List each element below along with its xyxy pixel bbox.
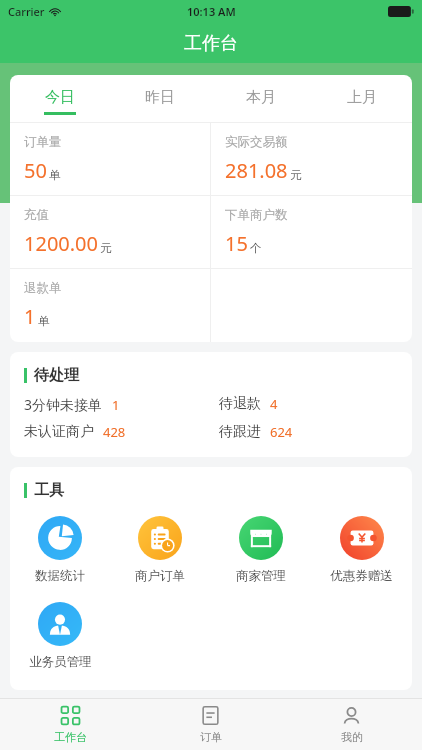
staticText: 工作台 <box>184 32 238 55</box>
button[interactable]: 未认证商户 <box>24 423 211 441</box>
staticText: 工作台 <box>54 730 87 744</box>
button[interactable]: 优惠券赠送 <box>311 516 412 584</box>
staticText: 1 <box>112 396 120 414</box>
staticText: 1 <box>24 303 36 330</box>
staticText: Carrier <box>8 4 45 19</box>
staticText: 单 <box>38 314 50 328</box>
button[interactable]: 本月 <box>210 75 311 122</box>
staticText: 昨日 <box>145 88 175 107</box>
staticText: 数据统计 <box>35 568 85 584</box>
staticText: 今日 <box>45 88 75 107</box>
staticText: 单 <box>49 168 61 182</box>
staticText: 商户订单 <box>135 568 185 584</box>
staticText: 我的 <box>341 730 363 744</box>
button[interactable]: 订单 <box>140 699 281 750</box>
other: 优惠券赠送 <box>340 516 384 560</box>
staticText: 实际交易额 <box>225 134 288 150</box>
button[interactable]: 今日 <box>10 75 110 122</box>
staticText: 上月 <box>347 88 377 107</box>
staticText: 优惠券赠送 <box>330 568 393 584</box>
staticText: 待跟进 <box>219 423 261 441</box>
button[interactable]: 我的 <box>281 699 422 750</box>
staticText: 3分钟未接单 <box>24 395 103 414</box>
staticText: 订单 <box>200 730 222 744</box>
staticText: 50 <box>24 157 47 184</box>
button[interactable]: 商户订单 <box>110 516 210 584</box>
staticText: 待处理 <box>34 366 79 385</box>
staticText: 充值 <box>24 207 49 223</box>
staticText: 退款单 <box>24 280 62 296</box>
other: 业务员管理 <box>38 602 82 646</box>
staticText: 4 <box>270 395 278 413</box>
other: 订单 <box>200 705 221 726</box>
other: 商家管理 <box>239 516 283 560</box>
staticText: 元 <box>290 168 302 182</box>
staticText: 下单商户数 <box>225 207 288 223</box>
staticText: 15 <box>225 230 248 257</box>
staticText: 未认证商户 <box>24 423 94 441</box>
other: 我的 <box>341 705 362 726</box>
staticText: 元 <box>100 241 112 255</box>
staticText: 281.08 <box>225 157 288 184</box>
staticText: 624 <box>270 423 293 441</box>
staticText: 1200.00 <box>24 230 98 257</box>
button[interactable]: 数据统计 <box>10 516 110 584</box>
other: 商户订单 <box>138 516 182 560</box>
staticText: 订单量 <box>24 134 62 150</box>
button[interactable]: 待退款 <box>219 395 412 413</box>
staticText: 待退款 <box>219 395 261 413</box>
staticText: 工具 <box>34 481 64 500</box>
button[interactable]: 商家管理 <box>210 516 311 584</box>
other: 数据统计 <box>38 516 82 560</box>
button[interactable]: 上月 <box>311 75 412 122</box>
button[interactable]: 待跟进 <box>219 423 412 441</box>
staticText: 商家管理 <box>236 568 286 584</box>
staticText: 本月 <box>246 88 276 107</box>
button[interactable]: 业务员管理 <box>10 602 110 670</box>
button[interactable]: 3分钟未接单 <box>24 395 211 414</box>
other: 工作台 <box>60 705 81 726</box>
button[interactable]: 工作台 <box>0 699 140 750</box>
staticText: 10:13 AM <box>187 4 236 19</box>
button[interactable]: 昨日 <box>110 75 210 122</box>
staticText: 业务员管理 <box>29 654 92 670</box>
staticText: 个 <box>250 241 262 255</box>
staticText: 428 <box>103 423 126 441</box>
